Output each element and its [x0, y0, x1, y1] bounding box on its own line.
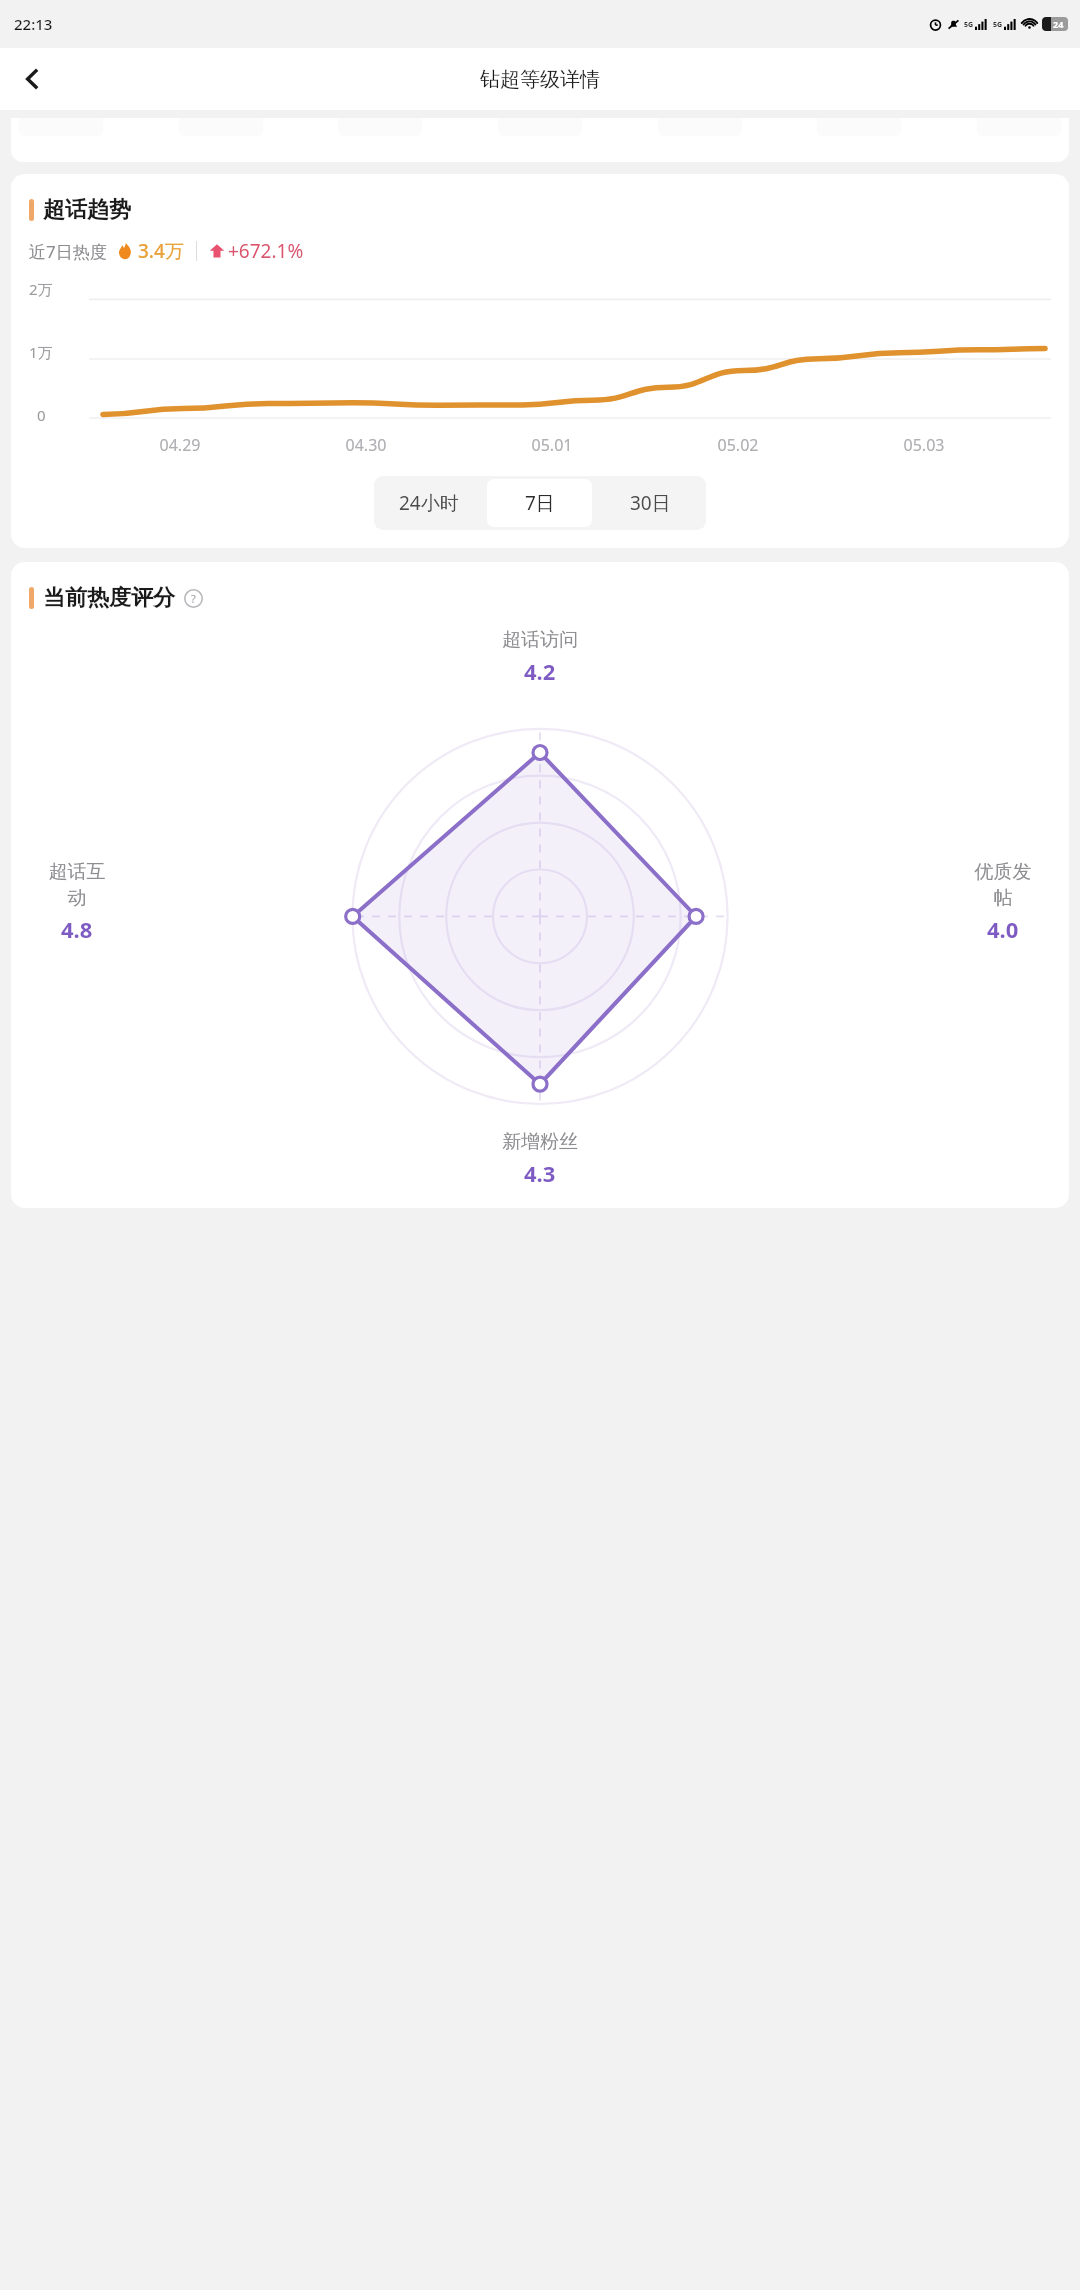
staticText: 05.02: [645, 434, 831, 456]
staticText: 22:13: [14, 14, 53, 34]
staticText: 05.03: [831, 434, 1017, 456]
staticText: 1万: [29, 342, 53, 362]
staticText: 05.01: [459, 434, 645, 456]
staticText: ?: [191, 591, 196, 606]
staticText: 0: [37, 405, 46, 425]
button[interactable]: Help: [182, 587, 204, 609]
staticText: 4.8: [61, 914, 93, 944]
staticText: 钻超等级详情: [480, 67, 600, 92]
staticText: 24: [1053, 18, 1064, 30]
staticText: 7日: [525, 490, 555, 516]
staticText: 2万: [29, 279, 53, 299]
staticText: 近7日热度: [29, 240, 107, 263]
staticText: 新增粉丝: [502, 1130, 578, 1154]
staticText: 超话趋势: [43, 196, 131, 224]
staticText: 30日: [630, 490, 671, 516]
staticText: 超话访问: [502, 628, 578, 652]
staticText: 5G: [993, 20, 1003, 30]
staticText: 超话互动: [46, 860, 108, 910]
button[interactable]: 24小时: [374, 476, 484, 530]
staticText: 24小时: [399, 490, 459, 516]
staticText: 5G: [964, 20, 974, 30]
staticText: 4.2: [524, 656, 556, 686]
button[interactable]: 30日: [595, 476, 706, 530]
staticText: 当前热度评分: [43, 584, 175, 612]
staticText: 3.4万: [138, 238, 184, 264]
button[interactable]: 7日: [487, 479, 592, 527]
staticText: +672.1%: [228, 238, 304, 264]
staticText: 优质发帖: [972, 860, 1034, 910]
staticText: 04.29: [87, 434, 273, 456]
staticText: 04.30: [273, 434, 459, 456]
staticText: 4.3: [524, 1158, 556, 1188]
staticText: 4.0: [987, 914, 1019, 944]
button[interactable]: Back: [8, 55, 56, 103]
